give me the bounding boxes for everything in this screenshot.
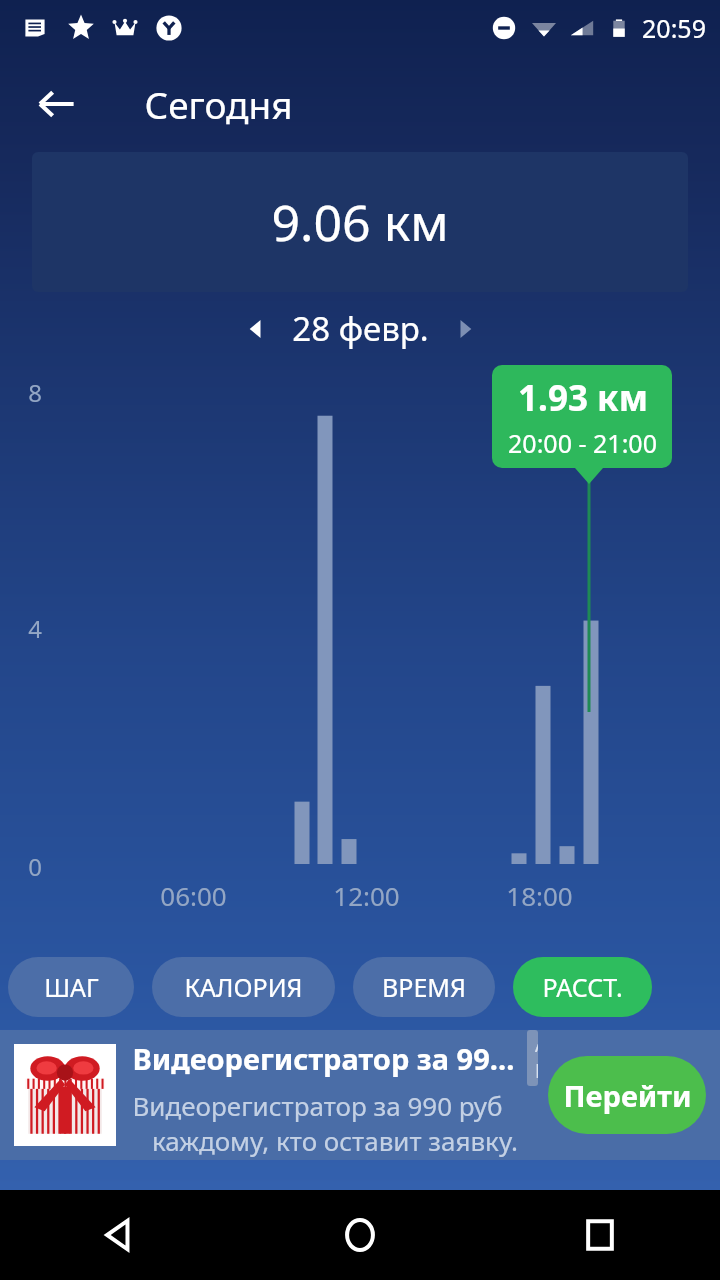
button[interactable]: Previous day <box>234 307 278 351</box>
staticText: 20:00 - 21:00 <box>508 426 657 460</box>
staticText: Сегодня <box>144 79 293 129</box>
button[interactable]: Home <box>240 1190 480 1280</box>
staticText: 4 <box>28 612 42 645</box>
staticText: 20:59 <box>642 11 706 45</box>
button[interactable]: 1.93 км <box>492 365 672 468</box>
staticText: 06:00 <box>160 878 227 913</box>
staticText: 1.93 км <box>518 374 648 422</box>
staticText: Видеорегистратор за 99… <box>132 1039 515 1078</box>
button[interactable]: 9.06 км <box>32 152 688 292</box>
staticText: 8 <box>28 376 42 409</box>
button[interactable]: КАЛОРИЯ <box>152 957 335 1017</box>
button[interactable]: Видеорегистратор за 99… <box>0 1030 720 1160</box>
staticText: КАЛОРИЯ <box>184 970 303 1004</box>
staticText: каждому, кто оставит заявку. Ак… <box>132 1123 538 1160</box>
button[interactable]: ШАГ <box>8 957 134 1017</box>
staticText: 28 февр. <box>292 306 429 351</box>
staticText: Видеорегистратор за 990 руб <box>132 1088 503 1123</box>
staticText: ВРЕМЯ <box>382 970 466 1004</box>
button[interactable]: Next day <box>443 307 487 351</box>
staticText: 9.06 км <box>271 188 449 256</box>
staticText: 0 <box>28 850 42 883</box>
button[interactable]: Перейти <box>548 1056 706 1134</box>
button[interactable]: Back <box>22 70 90 138</box>
staticText: 12:00 <box>333 878 400 913</box>
button[interactable]: Recent apps <box>480 1190 720 1280</box>
staticText: Перейти <box>563 1076 692 1115</box>
staticText: ШАГ <box>44 970 99 1004</box>
staticText: 18:00 <box>506 878 573 913</box>
staticText: РАССТ. <box>542 970 623 1004</box>
button[interactable]: РАССТ. <box>513 957 652 1017</box>
button[interactable]: Back <box>0 1190 240 1280</box>
button[interactable]: ВРЕМЯ <box>353 957 495 1017</box>
